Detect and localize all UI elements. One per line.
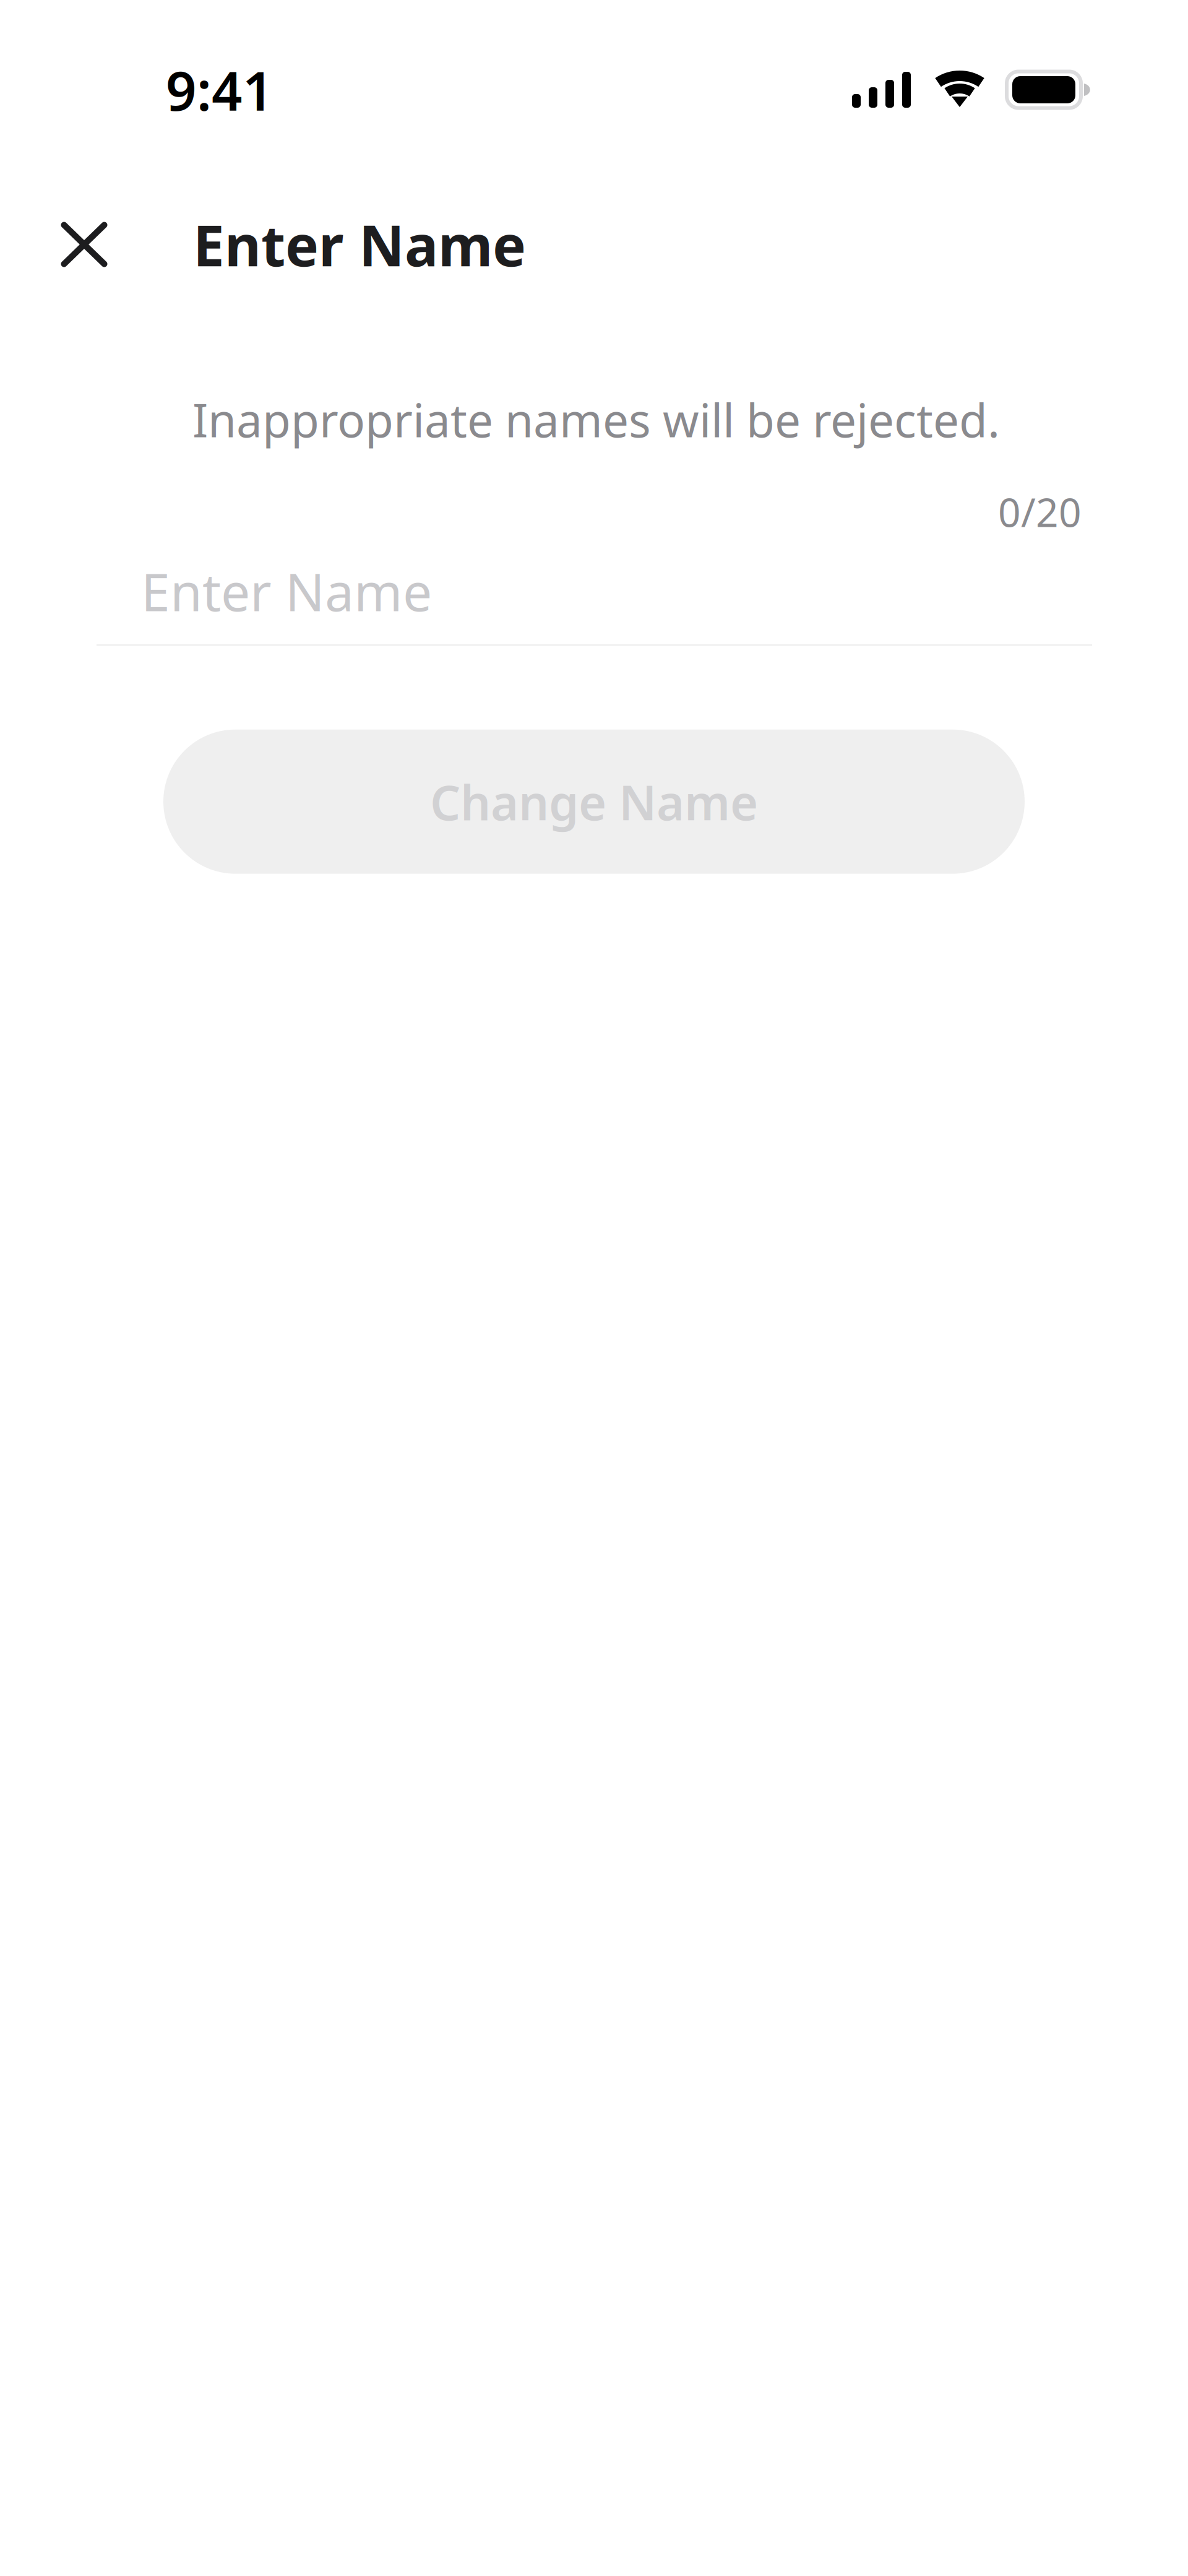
button[interactable]: Enter Name (97, 556, 1092, 646)
staticText: Enter Name (193, 207, 526, 282)
staticText: Inappropriate names will be rejected. (192, 389, 1000, 450)
staticText: 9:41 (166, 54, 273, 125)
button[interactable]: Change Name (163, 730, 1025, 874)
staticText: Change Name (430, 770, 758, 833)
staticText: Enter Name (141, 556, 432, 625)
button[interactable]: Close (35, 195, 134, 294)
staticText: 0/20 (998, 485, 1082, 538)
